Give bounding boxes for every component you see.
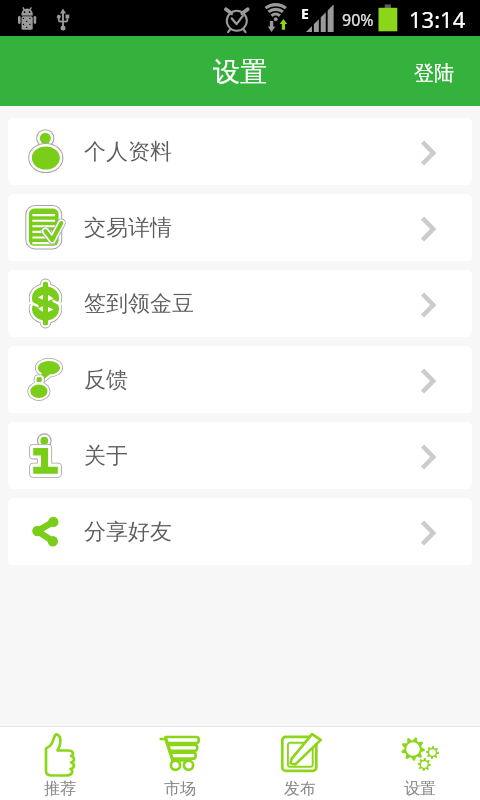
- button[interactable]: 反馈: [8, 346, 472, 413]
- button[interactable]: 个人资料: [8, 118, 472, 185]
- staticText: 发布: [284, 779, 316, 799]
- button[interactable]: 推荐: [0, 727, 120, 800]
- staticText: 市场: [164, 779, 196, 799]
- button[interactable]: 交易详情: [8, 194, 472, 261]
- staticText: 关于: [84, 442, 128, 470]
- button[interactable]: 发布: [240, 727, 360, 800]
- button[interactable]: 登陆: [402, 51, 466, 96]
- staticText: 签到领金豆: [84, 290, 194, 318]
- staticText: 登陆: [414, 61, 454, 86]
- staticText: 交易详情: [84, 214, 172, 242]
- staticText: E: [301, 4, 309, 23]
- staticText: 反馈: [84, 366, 128, 394]
- staticText: 13:14: [409, 4, 466, 34]
- staticText: 分享好友: [84, 518, 172, 546]
- staticText: 90%: [342, 9, 374, 31]
- button[interactable]: 关于: [8, 422, 472, 489]
- button[interactable]: 签到领金豆: [8, 270, 472, 337]
- staticText: 个人资料: [84, 138, 172, 166]
- button[interactable]: 分享好友: [8, 498, 472, 565]
- staticText: 设置: [213, 55, 267, 89]
- staticText: 推荐: [44, 779, 76, 799]
- button[interactable]: 设置: [360, 727, 480, 800]
- button[interactable]: 市场: [120, 727, 240, 800]
- staticText: 设置: [404, 779, 436, 799]
